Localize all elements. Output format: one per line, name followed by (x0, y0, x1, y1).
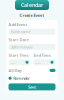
staticText: Calendar (21, 1, 43, 9)
staticText: Add Event (8, 22, 27, 27)
staticText: --:-- (10, 60, 15, 65)
staticText: End Time (33, 52, 50, 58)
staticText: All Day (8, 68, 21, 73)
staticText: dd/mm/yyyy (10, 44, 32, 50)
button[interactable]: Save (8, 83, 55, 90)
staticText: Event name (10, 29, 30, 34)
staticText: Save (28, 84, 36, 89)
staticText: Start Time (8, 52, 28, 58)
staticText: Create Event (19, 12, 44, 18)
staticText: --:-- (35, 60, 40, 65)
staticText: Reminder (13, 76, 30, 81)
staticText: Start Date (8, 37, 28, 42)
